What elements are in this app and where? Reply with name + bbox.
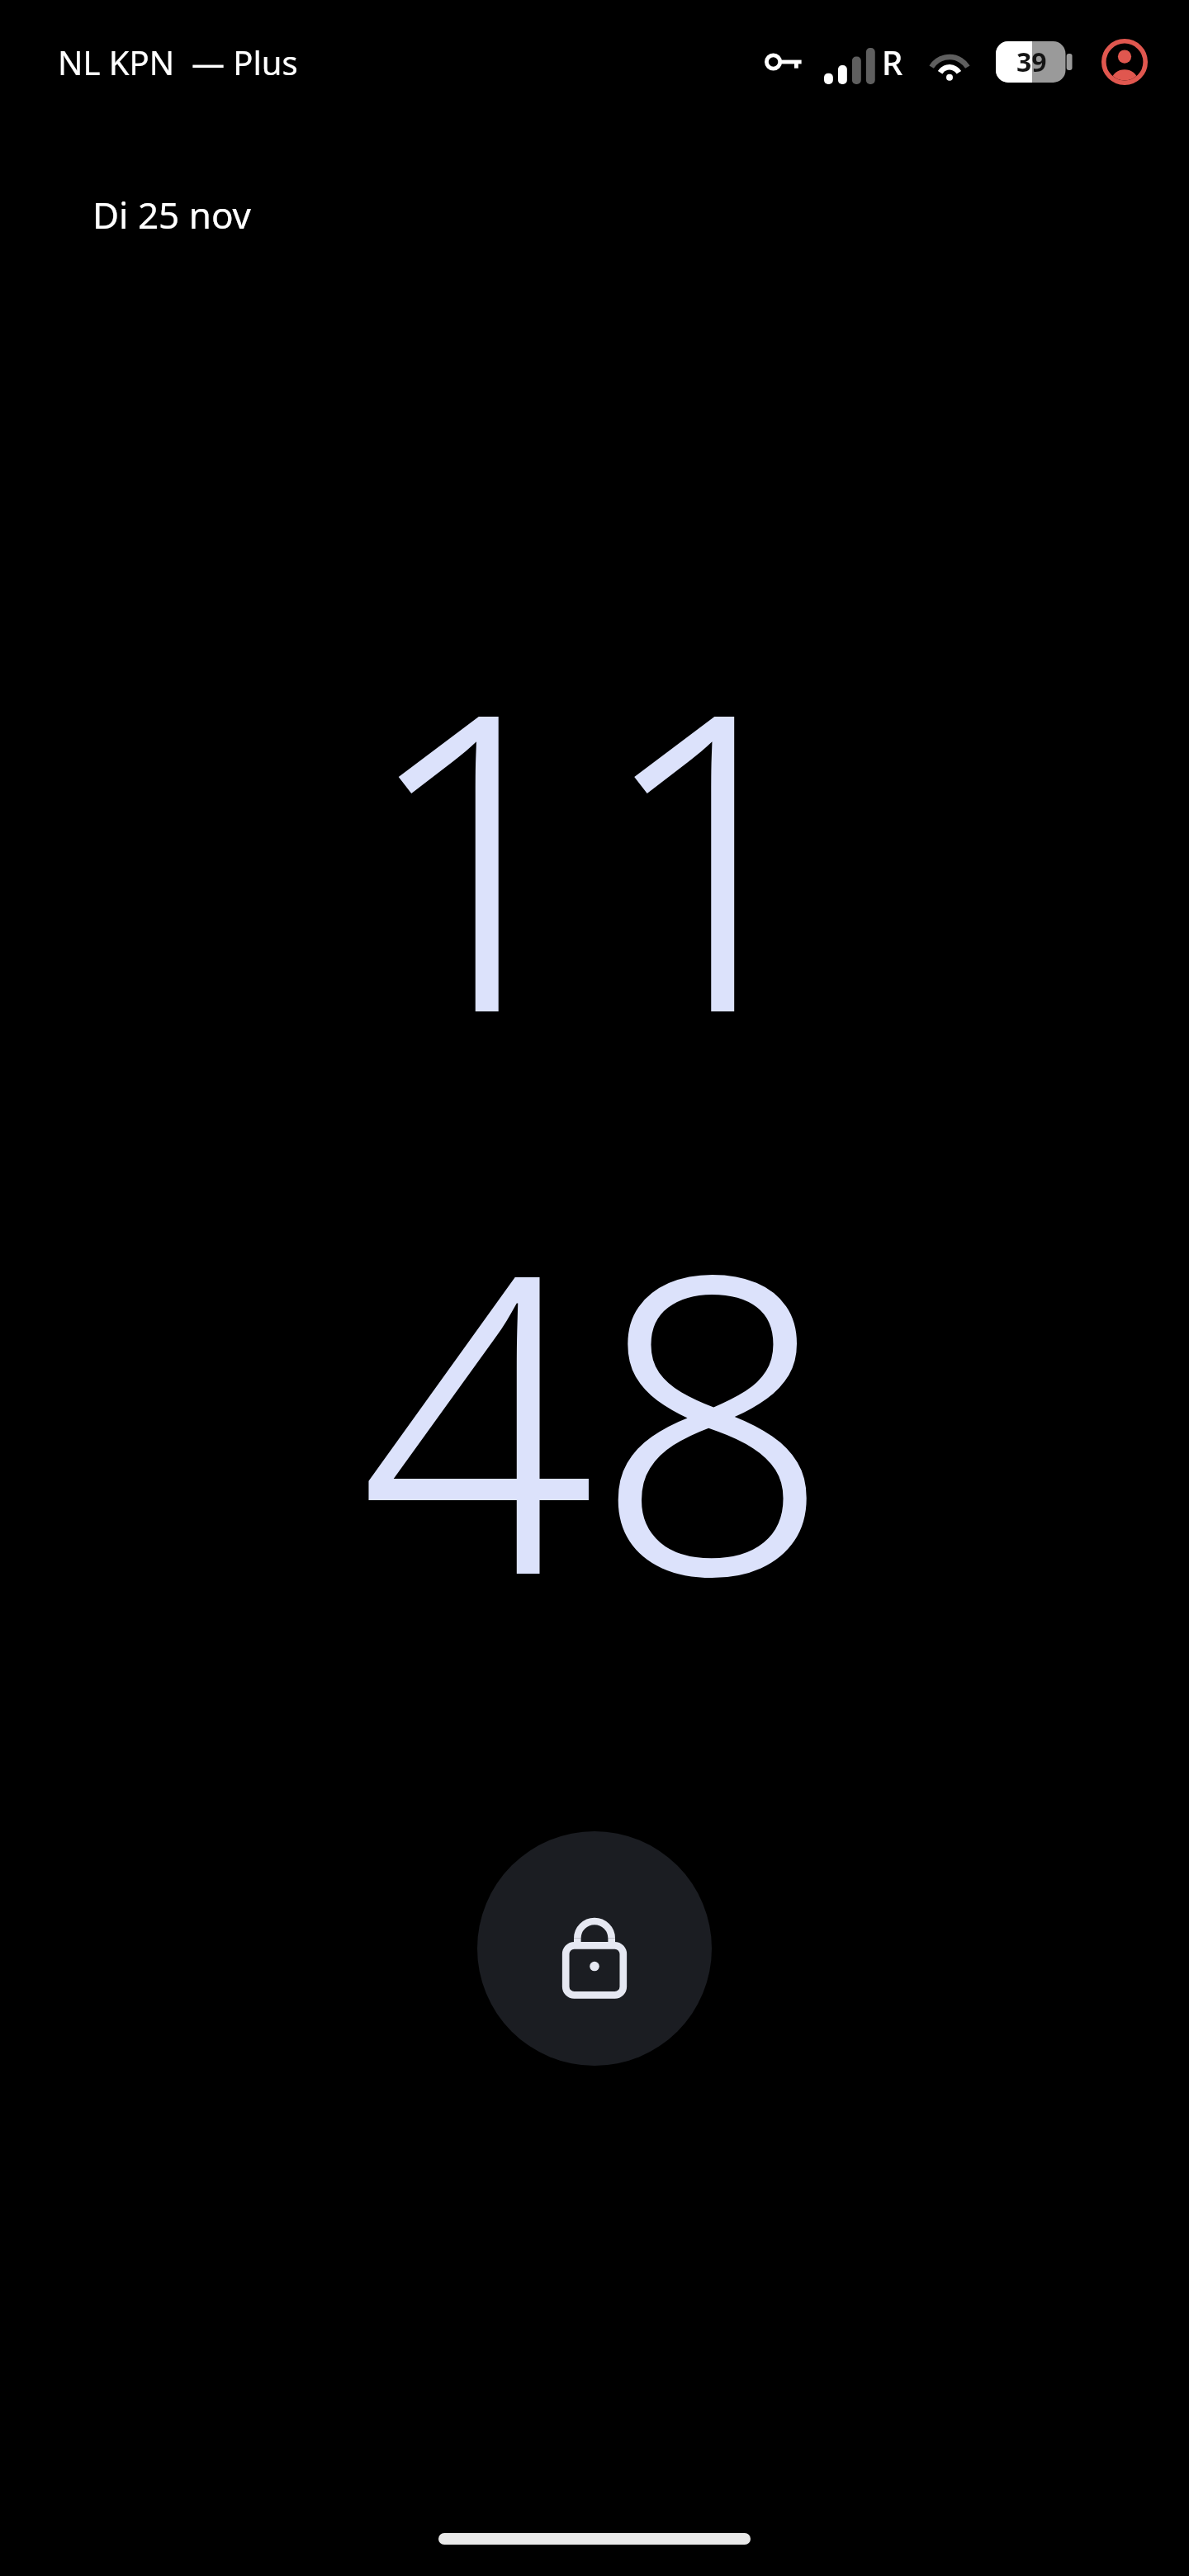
staticText: R xyxy=(882,40,903,84)
staticText: 48 xyxy=(359,1132,831,1694)
other: Mobile signal xyxy=(824,48,877,84)
button[interactable]: Unlock xyxy=(477,1831,712,2066)
button[interactable]: User profile xyxy=(1101,39,1148,85)
other: Wi-Fi xyxy=(926,44,973,80)
other: VPN xyxy=(765,42,804,82)
staticText: 39 xyxy=(1016,44,1047,80)
staticText: Di 25 nov xyxy=(92,190,251,239)
other: Battery 39 percent xyxy=(996,41,1075,83)
staticText: 11 xyxy=(359,570,831,1132)
staticText: NL KPN — Plus xyxy=(58,40,298,84)
